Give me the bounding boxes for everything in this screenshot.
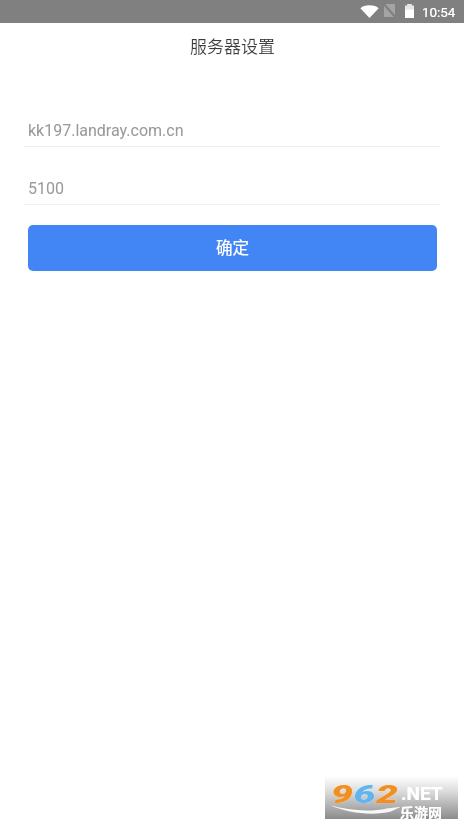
staticText: 9 xyxy=(331,778,353,809)
staticText: kk197.landray.com.cn xyxy=(28,121,184,140)
staticText: .NET xyxy=(401,782,443,804)
staticText: 服务器设置 xyxy=(190,33,275,58)
other: Battery xyxy=(405,4,414,18)
staticText: 6 xyxy=(353,778,376,809)
other: Wi-Fi connected xyxy=(360,4,379,18)
button[interactable]: 5100 xyxy=(24,177,440,205)
other: No SIM card xyxy=(384,4,395,17)
staticText: 5100 xyxy=(28,179,64,198)
staticText: 乐游网 xyxy=(400,802,442,822)
staticText: 确定 xyxy=(216,235,249,259)
staticText: 2 xyxy=(376,778,399,809)
button[interactable]: 确定 xyxy=(28,225,437,271)
staticText: 2 xyxy=(376,778,399,809)
staticText: 6 xyxy=(353,778,376,809)
staticText: 10:54 xyxy=(422,5,456,21)
button[interactable]: kk197.landray.com.cn xyxy=(24,119,440,147)
staticText: 9 xyxy=(331,778,353,809)
